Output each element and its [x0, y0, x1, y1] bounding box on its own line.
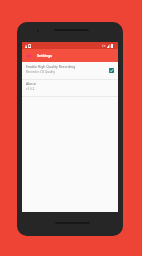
- staticText: Enable High Quality Recording: [26, 64, 76, 69]
- button[interactable]: Enable High Quality Recording: [106, 62, 117, 79]
- button[interactable]: Navigate up: [23, 49, 34, 62]
- staticText: About: [26, 81, 36, 86]
- staticText: Settings: [37, 53, 53, 58]
- button[interactable]: Enable High Quality Recording: [22, 62, 118, 79]
- button[interactable]: About: [22, 80, 118, 96]
- staticText: v1.6.2: [26, 87, 35, 91]
- staticText: Record in CD Quality: [26, 70, 55, 74]
